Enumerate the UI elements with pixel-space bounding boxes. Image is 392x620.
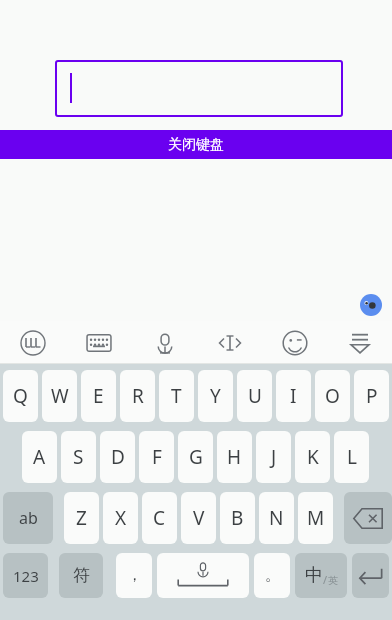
button[interactable]: I xyxy=(276,370,311,422)
button[interactable]: Voice input xyxy=(132,321,197,364)
button[interactable]: ab xyxy=(3,492,53,544)
staticText: U xyxy=(248,383,262,409)
button[interactable]: K xyxy=(295,431,330,483)
button[interactable] xyxy=(55,60,343,117)
button[interactable]: C xyxy=(142,492,177,544)
button[interactable]: R xyxy=(120,370,155,422)
button[interactable]: 123 xyxy=(3,553,48,598)
button[interactable]: Q xyxy=(3,370,38,422)
button[interactable]: B xyxy=(220,492,255,544)
staticText: 123 xyxy=(13,566,39,586)
button[interactable]: Input method xyxy=(0,321,66,364)
button[interactable]: E xyxy=(81,370,116,422)
staticText: 关闭键盘 xyxy=(168,136,224,154)
button[interactable]: A xyxy=(22,431,57,483)
button[interactable]: T xyxy=(159,370,194,422)
button[interactable]: Z xyxy=(64,492,99,544)
button[interactable]: Move cursor xyxy=(197,321,262,364)
button[interactable]: Backspace xyxy=(344,492,392,544)
staticText: J xyxy=(271,444,277,470)
button[interactable]: H xyxy=(217,431,252,483)
staticText: N xyxy=(269,505,284,531)
button[interactable]: 符 xyxy=(59,553,103,598)
staticText: 中 xyxy=(305,564,323,587)
staticText: P xyxy=(366,383,378,409)
staticText: R xyxy=(132,383,144,409)
staticText: Q xyxy=(13,383,28,409)
staticText: F xyxy=(152,444,162,470)
staticText: X xyxy=(115,505,127,531)
staticText: T xyxy=(171,383,182,409)
staticText: 。 xyxy=(265,566,280,585)
staticText: ， xyxy=(127,566,142,585)
staticText: K xyxy=(307,444,319,470)
button[interactable]: M xyxy=(298,492,333,544)
staticText: E xyxy=(93,383,104,409)
button[interactable]: V xyxy=(181,492,216,544)
button[interactable]: Keyboard layout xyxy=(66,321,132,364)
button[interactable]: Language globe xyxy=(360,294,382,316)
staticText: B xyxy=(231,505,244,531)
button[interactable]: F xyxy=(139,431,174,483)
staticText: ab xyxy=(19,507,38,529)
button[interactable]: 。 xyxy=(254,553,290,598)
staticText: H xyxy=(227,444,242,470)
button[interactable]: N xyxy=(259,492,294,544)
staticText: M xyxy=(307,505,325,531)
staticText: / xyxy=(323,572,328,587)
button[interactable]: L xyxy=(334,431,369,483)
button[interactable]: W xyxy=(42,370,77,422)
button[interactable]: S xyxy=(61,431,96,483)
staticText: G xyxy=(189,444,203,470)
staticText: A xyxy=(33,444,46,470)
staticText: 符 xyxy=(73,565,90,586)
staticText: D xyxy=(111,444,125,470)
staticText: C xyxy=(153,505,166,531)
button[interactable]: Enter xyxy=(352,553,389,598)
button[interactable]: U xyxy=(237,370,272,422)
button[interactable]: 关闭键盘 xyxy=(0,130,392,159)
button[interactable]: O xyxy=(315,370,350,422)
button[interactable]: Emoji xyxy=(262,321,327,364)
staticText: 英 xyxy=(328,574,338,587)
button[interactable]: X xyxy=(103,492,138,544)
button[interactable]: Space xyxy=(157,553,249,598)
button[interactable]: ， xyxy=(116,553,152,598)
button[interactable]: D xyxy=(100,431,135,483)
button[interactable]: Hide keyboard xyxy=(327,321,392,364)
staticText: O xyxy=(325,383,340,409)
staticText: S xyxy=(73,444,84,470)
staticText: Y xyxy=(210,383,221,409)
staticText: V xyxy=(193,505,205,531)
staticText: W xyxy=(51,383,69,409)
staticText: L xyxy=(347,444,357,470)
button[interactable]: 中 xyxy=(295,553,347,598)
button[interactable]: J xyxy=(256,431,291,483)
button[interactable]: P xyxy=(354,370,389,422)
staticText: Z xyxy=(76,505,87,531)
button[interactable]: G xyxy=(178,431,213,483)
button[interactable]: Y xyxy=(198,370,233,422)
staticText: I xyxy=(290,383,297,409)
